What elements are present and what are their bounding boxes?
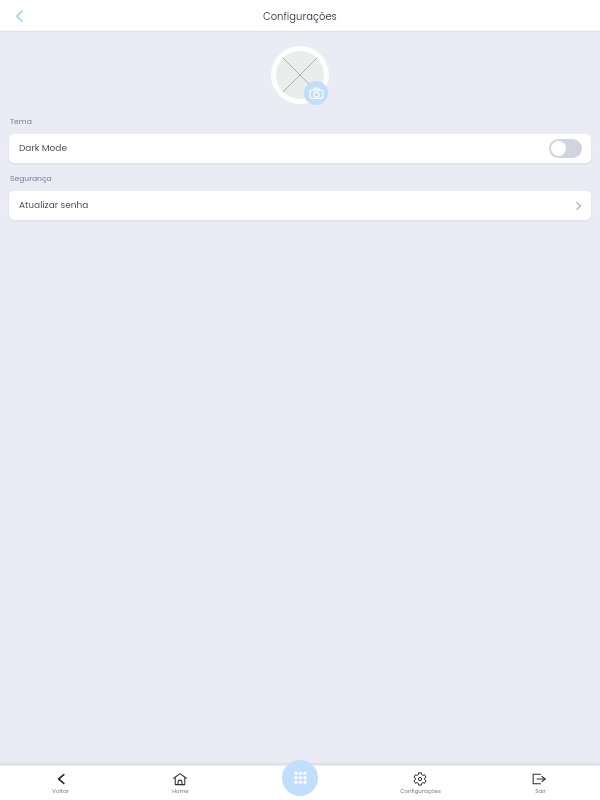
staticText: Atualizar senha: [19, 199, 89, 212]
button[interactable]: Home: [120, 766, 240, 800]
button[interactable]: Configurações: [360, 766, 480, 800]
staticText: Voltar: [52, 787, 69, 795]
staticText: Configurações: [263, 9, 337, 23]
staticText: Home: [172, 787, 189, 795]
button[interactable]: Sair: [480, 766, 600, 800]
button[interactable]: Voltar: [0, 0, 31, 31]
button[interactable]: Voltar: [0, 766, 120, 800]
button[interactable]: Alterar foto: [304, 81, 328, 105]
staticText: Tema: [10, 116, 32, 127]
staticText: Configurações: [400, 787, 441, 795]
staticText: Segurança: [10, 173, 52, 184]
button[interactable]: Dark Mode: [549, 139, 582, 158]
staticText: Dark Mode: [19, 142, 68, 155]
button[interactable]: Atualizar senha: [9, 191, 591, 220]
button[interactable]: Dark Mode: [9, 134, 591, 163]
staticText: Sair: [535, 787, 546, 795]
button[interactable]: Aplicativos: [282, 760, 318, 796]
